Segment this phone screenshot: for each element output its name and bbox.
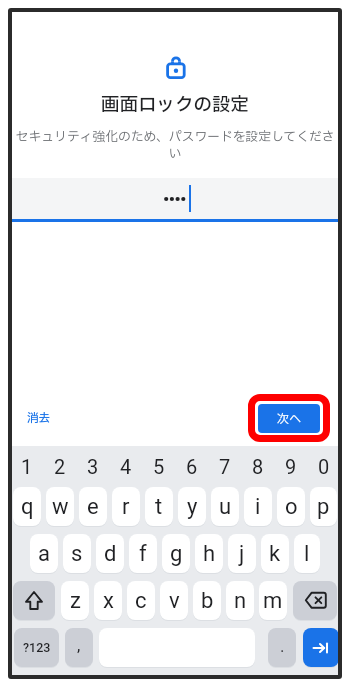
- staticText: o: [285, 494, 298, 520]
- staticText: b: [201, 588, 214, 614]
- button[interactable]: t: [145, 487, 173, 526]
- staticText: m: [263, 588, 283, 614]
- button[interactable]: 6: [178, 446, 206, 487]
- staticText: l: [304, 541, 310, 567]
- button[interactable]: e: [79, 487, 107, 526]
- staticText: 画面ロックの設定: [11, 91, 339, 119]
- button[interactable]: 5: [145, 446, 173, 487]
- button[interactable]: v: [160, 581, 188, 620]
- button[interactable]: p: [310, 487, 337, 526]
- staticText: ,: [77, 635, 81, 655]
- staticText: 4: [120, 455, 132, 478]
- button[interactable]: q: [13, 487, 41, 526]
- staticText: u: [219, 494, 232, 520]
- staticText: k: [269, 541, 281, 567]
- button[interactable]: z: [61, 581, 89, 620]
- staticText: a: [38, 541, 50, 567]
- button[interactable]: 4: [112, 446, 140, 487]
- button[interactable]: 9: [277, 446, 305, 487]
- button[interactable]: o: [277, 487, 305, 526]
- staticText: f: [139, 541, 147, 567]
- staticText: 3: [87, 455, 99, 478]
- staticText: r: [122, 494, 130, 520]
- button[interactable]: i: [244, 487, 272, 526]
- button[interactable]: w: [46, 487, 74, 526]
- staticText: x: [103, 588, 114, 614]
- staticText: h: [203, 541, 216, 567]
- button[interactable]: ,: [65, 628, 93, 667]
- staticText: c: [135, 588, 147, 614]
- staticText: g: [170, 541, 183, 567]
- staticText: v: [169, 588, 180, 614]
- button[interactable]: [11, 178, 339, 222]
- staticText: i: [255, 494, 261, 520]
- button[interactable]: 1: [13, 446, 41, 487]
- staticText: 9: [285, 455, 297, 478]
- button[interactable]: 消去: [27, 410, 50, 427]
- staticText: p: [317, 494, 330, 520]
- button[interactable]: m: [259, 581, 287, 620]
- button[interactable]: .: [268, 628, 296, 667]
- button[interactable]: [13, 581, 55, 620]
- staticText: s: [71, 541, 83, 567]
- button[interactable]: l: [294, 534, 320, 573]
- staticText: y: [187, 494, 198, 520]
- button[interactable]: h: [195, 534, 223, 573]
- staticText: セキュリティ強化のため、パスワードを設定してくださ い: [11, 127, 339, 164]
- staticText: d: [104, 541, 117, 567]
- button[interactable]: g: [162, 534, 190, 573]
- button[interactable]: 0: [310, 446, 337, 487]
- button[interactable]: 2: [46, 446, 74, 487]
- button[interactable]: 7: [211, 446, 239, 487]
- staticText: 7: [219, 455, 231, 478]
- button[interactable]: 8: [244, 446, 272, 487]
- button[interactable]: c: [127, 581, 155, 620]
- button[interactable]: a: [30, 534, 58, 573]
- button[interactable]: b: [193, 581, 221, 620]
- button[interactable]: n: [226, 581, 254, 620]
- button[interactable]: [303, 628, 339, 667]
- staticText: j: [239, 541, 245, 567]
- button[interactable]: [293, 581, 337, 620]
- staticText: e: [87, 494, 99, 520]
- staticText: z: [70, 588, 81, 614]
- staticText: 6: [186, 455, 198, 478]
- staticText: 8: [252, 455, 264, 478]
- button[interactable]: d: [96, 534, 124, 573]
- staticText: 5: [153, 455, 165, 478]
- button[interactable]: x: [94, 581, 122, 620]
- staticText: 0: [318, 455, 330, 478]
- staticText: .: [280, 636, 285, 656]
- staticText: q: [21, 494, 34, 520]
- button[interactable]: s: [63, 534, 91, 573]
- staticText: ?123: [23, 640, 51, 655]
- button[interactable]: k: [261, 534, 289, 573]
- button[interactable]: r: [112, 487, 140, 526]
- button[interactable]: 3: [79, 446, 107, 487]
- staticText: 1: [21, 455, 33, 478]
- staticText: w: [52, 494, 69, 520]
- button[interactable]: j: [228, 534, 256, 573]
- button[interactable]: f: [129, 534, 157, 573]
- staticText: n: [234, 588, 247, 614]
- button[interactable]: u: [211, 487, 239, 526]
- staticText: 2: [54, 455, 66, 478]
- button[interactable]: ?123: [14, 628, 59, 667]
- button[interactable]: 次へ: [258, 404, 320, 433]
- staticText: t: [155, 494, 163, 520]
- staticText: 次へ: [277, 410, 302, 428]
- button[interactable]: y: [178, 487, 206, 526]
